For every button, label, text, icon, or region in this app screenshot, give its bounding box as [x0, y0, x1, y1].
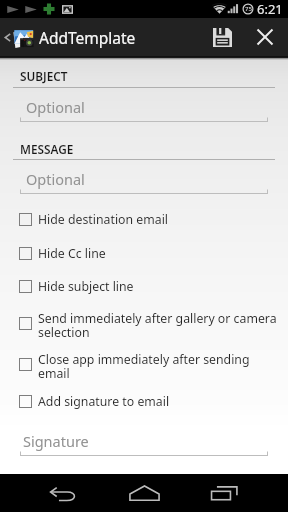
- staticText: AddTemplate: [39, 27, 136, 48]
- button[interactable]: Recent apps: [184, 474, 264, 512]
- staticText: Send immediately after gallery or camera…: [38, 310, 278, 341]
- button[interactable]: Back: [24, 474, 104, 512]
- staticText: Signature: [23, 431, 89, 451]
- button[interactable]: [0, 311, 288, 336]
- button[interactable]: Home: [104, 474, 184, 512]
- staticText: Hide Cc line: [38, 245, 106, 262]
- other: Navigate up: [3, 33, 12, 42]
- button[interactable]: Close: [246, 18, 284, 56]
- button[interactable]: [0, 352, 288, 377]
- staticText: SUBJECT: [20, 68, 68, 84]
- staticText: Add signature to email: [38, 393, 170, 410]
- button[interactable]: [0, 241, 288, 266]
- staticText: Close app immediately after sending emai…: [38, 351, 278, 382]
- staticText: 75: [245, 5, 252, 13]
- button[interactable]: [0, 389, 288, 414]
- staticText: Hide subject line: [38, 278, 134, 295]
- staticText: Optional: [26, 169, 85, 189]
- button[interactable]: [0, 207, 288, 232]
- button[interactable]: Navigate up: [0, 18, 136, 56]
- button[interactable]: [0, 274, 288, 299]
- staticText: 6:21: [257, 0, 283, 18]
- staticText: Hide destination email: [38, 211, 169, 228]
- staticText: Optional: [26, 97, 85, 117]
- button[interactable]: Save: [203, 18, 241, 56]
- staticText: MESSAGE: [20, 141, 74, 157]
